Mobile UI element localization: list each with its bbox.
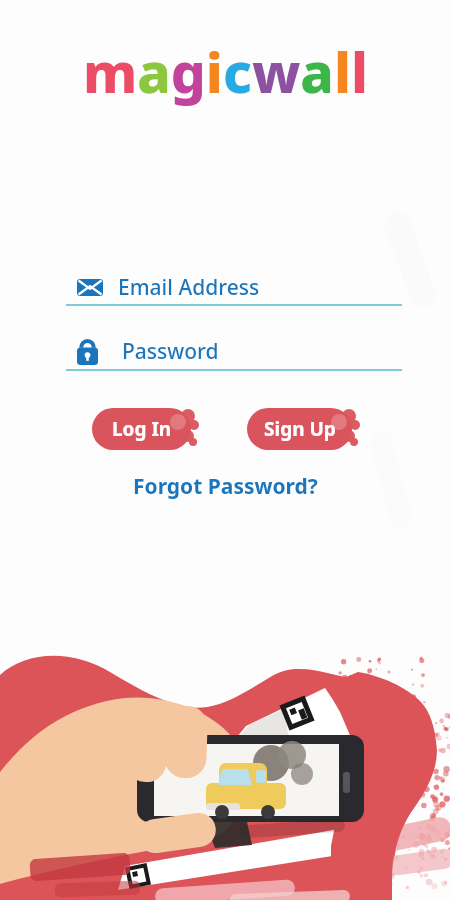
button[interactable]: Email Address [77, 273, 260, 302]
staticText: Sign Up [264, 416, 336, 442]
staticText: magicwall [83, 34, 368, 109]
staticText: Password [122, 337, 219, 366]
staticText: Email Address [118, 273, 260, 302]
button[interactable]: Log In [92, 408, 191, 450]
button[interactable]: Password [77, 337, 219, 366]
button[interactable]: Forgot Password? [133, 472, 318, 501]
button[interactable]: Sign Up [247, 408, 352, 450]
staticText: Log In [112, 416, 172, 442]
